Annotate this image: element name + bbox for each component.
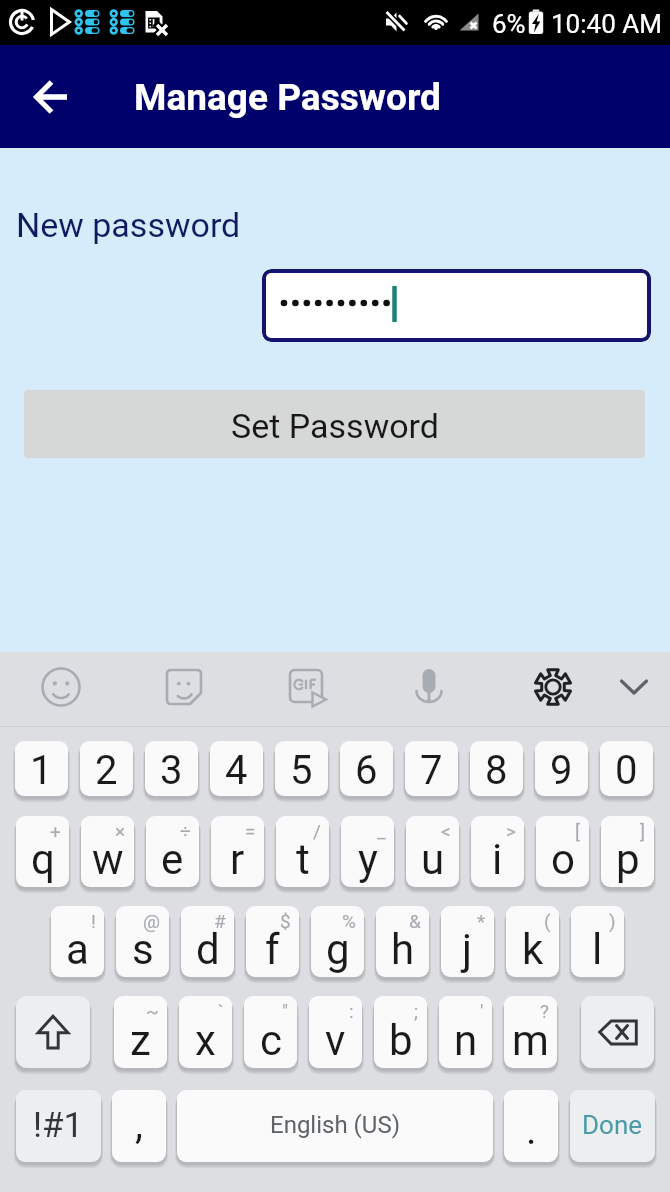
button[interactable]: m: [504, 996, 557, 1068]
button[interactable]: x: [179, 996, 232, 1068]
button[interactable]: b: [374, 996, 427, 1068]
button[interactable]: English (US): [177, 1090, 493, 1162]
staticText: /: [313, 820, 321, 842]
button[interactable]: [262, 269, 651, 342]
staticText: 3: [160, 747, 183, 794]
button[interactable]: Hide keyboard: [603, 656, 665, 718]
staticText: q: [31, 835, 55, 884]
staticText: +: [50, 820, 61, 842]
staticText: :: [349, 1000, 354, 1022]
staticText: p: [616, 835, 640, 884]
staticText: 5: [290, 747, 313, 794]
button[interactable]: a: [51, 906, 104, 977]
button[interactable]: l: [571, 906, 624, 977]
staticText: f: [265, 925, 280, 974]
button[interactable]: 4: [210, 741, 263, 796]
staticText: ': [480, 1000, 484, 1022]
button[interactable]: t: [276, 816, 329, 887]
button[interactable]: s: [116, 906, 169, 977]
staticText: d: [196, 925, 220, 974]
staticText: 6: [355, 747, 378, 794]
staticText: 4: [225, 747, 248, 794]
button[interactable]: u: [406, 816, 459, 887]
staticText: 9: [550, 747, 573, 794]
staticText: _: [377, 820, 386, 842]
button[interactable]: Back: [20, 65, 84, 129]
staticText: %: [342, 910, 356, 932]
button[interactable]: Shift: [16, 996, 90, 1068]
button[interactable]: Done: [570, 1090, 655, 1162]
button[interactable]: !#1: [16, 1090, 101, 1162]
staticText: l: [592, 925, 603, 974]
button[interactable]: o: [536, 816, 589, 887]
staticText: (: [544, 910, 551, 932]
staticText: ): [609, 910, 616, 932]
button[interactable]: 1: [15, 741, 68, 796]
staticText: $: [280, 910, 291, 932]
button[interactable]: i: [471, 816, 524, 887]
button[interactable]: 2: [80, 741, 133, 796]
button[interactable]: 7: [405, 741, 458, 796]
staticText: 2: [95, 747, 118, 794]
button[interactable]: .: [504, 1090, 558, 1162]
staticText: ÷: [180, 820, 191, 842]
button[interactable]: k: [506, 906, 559, 977]
button[interactable]: j: [441, 906, 494, 977]
staticText: !: [91, 910, 96, 932]
staticText: `: [218, 1000, 224, 1022]
button[interactable]: y: [341, 816, 394, 887]
button[interactable]: g: [311, 906, 364, 977]
button[interactable]: Set Password: [24, 390, 645, 458]
staticText: English (US): [270, 1111, 400, 1139]
button[interactable]: z: [114, 996, 167, 1068]
button[interactable]: Voice input: [398, 656, 460, 718]
staticText: i: [492, 835, 503, 884]
staticText: u: [421, 835, 445, 884]
staticText: [: [575, 820, 581, 842]
button[interactable]: e: [146, 816, 199, 887]
button[interactable]: Backspace: [581, 996, 654, 1068]
button[interactable]: d: [181, 906, 234, 977]
staticText: 1: [30, 747, 53, 794]
staticText: m: [512, 1016, 549, 1065]
staticText: @: [143, 910, 161, 932]
button[interactable]: q: [16, 816, 69, 887]
button[interactable]: ,: [112, 1090, 166, 1162]
staticText: y: [358, 835, 378, 884]
button[interactable]: GIF: [275, 656, 337, 718]
staticText: h: [391, 925, 415, 974]
staticText: =: [245, 820, 256, 842]
button[interactable]: 6: [340, 741, 393, 796]
staticText: 10:40 AM: [551, 9, 662, 39]
button[interactable]: w: [81, 816, 134, 887]
staticText: <: [441, 820, 451, 842]
button[interactable]: Stickers: [153, 656, 215, 718]
staticText: 0: [615, 747, 638, 794]
button[interactable]: 9: [535, 741, 588, 796]
button[interactable]: Keyboard settings: [522, 656, 584, 718]
staticText: ": [282, 1000, 289, 1022]
staticText: j: [462, 925, 473, 974]
staticText: r: [230, 835, 245, 884]
button[interactable]: r: [211, 816, 264, 887]
staticText: 6%: [492, 9, 526, 39]
button[interactable]: p: [601, 816, 654, 887]
button[interactable]: 8: [470, 741, 523, 796]
button[interactable]: 3: [145, 741, 198, 796]
button[interactable]: Emoji: [30, 656, 92, 718]
button[interactable]: f: [246, 906, 299, 977]
button[interactable]: h: [376, 906, 429, 977]
button[interactable]: c: [244, 996, 297, 1068]
staticText: #: [214, 910, 226, 932]
staticText: t: [296, 835, 310, 884]
staticText: Manage Password: [134, 76, 441, 119]
button[interactable]: v: [309, 996, 362, 1068]
staticText: Set Password: [231, 406, 439, 446]
staticText: x: [195, 1016, 216, 1065]
staticText: n: [454, 1016, 478, 1065]
staticText: ?: [540, 1000, 549, 1022]
button[interactable]: n: [439, 996, 492, 1068]
button[interactable]: 0: [600, 741, 653, 796]
staticText: o: [551, 835, 575, 884]
button[interactable]: 5: [275, 741, 328, 796]
